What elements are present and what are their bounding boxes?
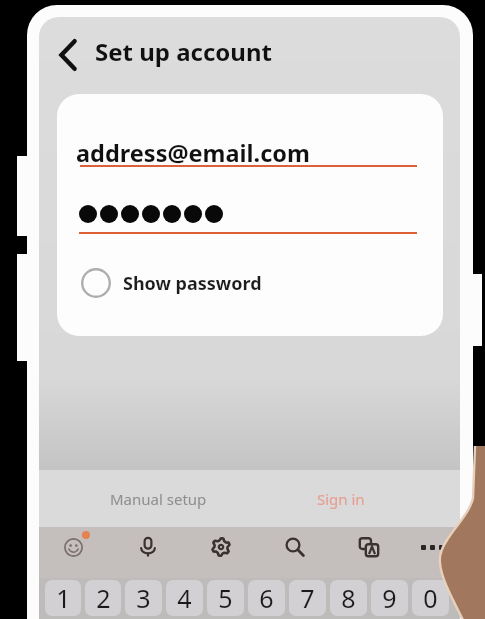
button[interactable]: Sign in bbox=[255, 470, 427, 527]
staticText: Sign in bbox=[317, 489, 365, 509]
staticText: 9 bbox=[382, 581, 397, 615]
button[interactable]: Settings bbox=[199, 525, 243, 569]
button[interactable]: Back bbox=[46, 33, 90, 77]
staticText: 8 bbox=[341, 581, 356, 615]
staticText: 1 bbox=[56, 581, 71, 615]
button[interactable]: Show password bbox=[80, 253, 262, 313]
staticText: address@email.com bbox=[76, 137, 310, 169]
staticText: 6 bbox=[259, 581, 274, 615]
staticText: 0 bbox=[423, 581, 438, 615]
staticText: 4 bbox=[177, 581, 192, 615]
staticText: Show password bbox=[123, 271, 262, 296]
button[interactable]: 5 bbox=[207, 580, 244, 616]
button[interactable]: 1 bbox=[45, 580, 81, 616]
button[interactable]: 6 bbox=[248, 580, 285, 616]
button[interactable]: Voice input bbox=[126, 525, 170, 569]
button[interactable]: Translate bbox=[347, 525, 391, 569]
button[interactable]: 4 bbox=[166, 580, 203, 616]
staticText: 3 bbox=[136, 581, 151, 615]
button[interactable]: 3 bbox=[125, 580, 162, 616]
button[interactable]: 0 bbox=[412, 580, 449, 616]
staticText: 7 bbox=[300, 581, 315, 615]
button[interactable]: 9 bbox=[371, 580, 408, 616]
button[interactable]: Emoji bbox=[51, 525, 95, 569]
staticText: Manual setup bbox=[110, 489, 207, 509]
staticText: 5 bbox=[218, 581, 233, 615]
button[interactable]: 8 bbox=[330, 580, 367, 616]
button[interactable]: Manual setup bbox=[61, 470, 255, 527]
staticText: 2 bbox=[96, 581, 111, 615]
staticText: Set up account bbox=[95, 35, 272, 68]
button[interactable]: 2 bbox=[85, 580, 121, 616]
button[interactable]: Search bbox=[273, 525, 317, 569]
button[interactable]: 7 bbox=[289, 580, 326, 616]
button[interactable]: More options bbox=[410, 525, 454, 569]
